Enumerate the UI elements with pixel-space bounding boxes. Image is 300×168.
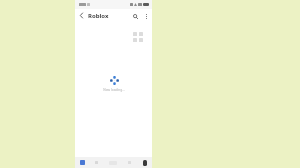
staticText: Roblox [88,12,109,20]
button[interactable]: Back [75,9,88,22]
button[interactable]: Grid view [131,30,144,43]
button[interactable]: Search [129,10,141,22]
button[interactable]: Assistant [137,157,152,168]
button[interactable]: More options [141,11,151,21]
button[interactable]: Apps [89,157,104,168]
staticText: Now loading... [103,88,125,92]
button[interactable]: Home [104,157,122,168]
button[interactable]: Recents [75,157,89,168]
button[interactable]: Back [122,157,137,168]
